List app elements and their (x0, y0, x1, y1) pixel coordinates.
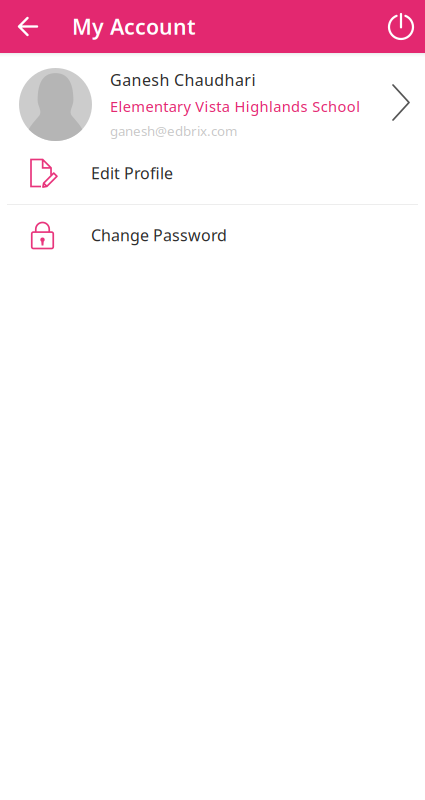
button[interactable]: Change Password (0, 205, 425, 277)
button[interactable]: Log out (375, 0, 425, 53)
staticText: Elementary Vista Highlands School (110, 96, 360, 116)
button[interactable]: Back (0, 0, 55, 53)
staticText: ganesh@edbrix.com (110, 122, 237, 140)
staticText: Edit Profile (91, 162, 173, 184)
button[interactable]: Ganesh Chaudhari (0, 57, 425, 152)
staticText: Change Password (91, 224, 227, 246)
button[interactable]: Edit Profile (0, 152, 425, 204)
staticText: My Account (72, 12, 196, 41)
staticText: Ganesh Chaudhari (110, 69, 255, 90)
